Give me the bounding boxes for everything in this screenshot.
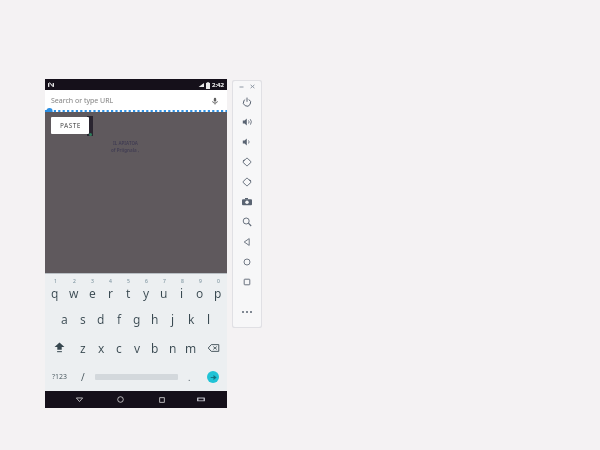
button[interactable]: a (55, 304, 74, 333)
button[interactable]: 4 (101, 274, 119, 304)
button[interactable]: g (128, 304, 146, 333)
staticText: 1 (54, 278, 57, 285)
button[interactable]: s (74, 304, 92, 333)
staticText: u (160, 285, 168, 301)
button[interactable]: 7 (155, 274, 173, 304)
button[interactable]: h (146, 304, 164, 333)
button[interactable]: Space (91, 362, 181, 391)
button[interactable]: ?123 (45, 362, 74, 391)
button[interactable]: Overview (233, 272, 261, 292)
button[interactable]: Go (198, 362, 227, 391)
button[interactable]: m (182, 333, 200, 362)
button[interactable]: v (128, 333, 146, 362)
button[interactable]: Recent apps (141, 391, 182, 408)
staticText: 9 (199, 278, 202, 285)
button[interactable]: f (110, 304, 128, 333)
button[interactable]: 0 (209, 274, 227, 304)
button[interactable]: 3 (83, 274, 101, 304)
button[interactable]: . (181, 362, 198, 391)
staticText: x (98, 340, 105, 356)
staticText: z (80, 340, 86, 356)
button[interactable]: b (146, 333, 164, 362)
button[interactable]: Take screenshot (233, 192, 261, 212)
staticText: q (51, 285, 59, 301)
staticText: k (188, 311, 195, 327)
button[interactable]: Shift (45, 333, 73, 362)
staticText: s (80, 311, 86, 327)
button[interactable]: / (74, 362, 91, 391)
staticText: y (143, 285, 150, 301)
staticText: 6 (145, 278, 148, 285)
button[interactable]: k (182, 304, 200, 333)
button[interactable]: Close (249, 83, 256, 90)
staticText: p (214, 285, 222, 301)
staticText: a (61, 311, 68, 327)
staticText: 7 (163, 278, 166, 285)
button[interactable]: 8 (173, 274, 191, 304)
staticText: f (117, 311, 122, 327)
staticText: 3 (91, 278, 94, 285)
button[interactable]: Zoom (233, 212, 261, 232)
staticText: b (151, 340, 159, 356)
staticText: r (108, 285, 113, 301)
staticText: l (207, 311, 211, 327)
staticText: c (116, 340, 122, 356)
staticText: PASTE (60, 121, 81, 130)
button[interactable]: Home (100, 391, 141, 408)
staticText: 0 (217, 278, 220, 285)
button[interactable]: 2 (64, 274, 83, 304)
button[interactable]: 6 (137, 274, 155, 304)
button[interactable]: Rotate right (233, 172, 261, 192)
button[interactable]: Hide keyboard (182, 391, 219, 408)
staticText: j (171, 311, 175, 327)
staticText: t (126, 285, 131, 301)
staticText: d (97, 311, 105, 327)
button[interactable]: PASTE (51, 117, 89, 134)
staticText: w (69, 285, 79, 301)
staticText: m (185, 340, 197, 356)
staticText: / (81, 370, 85, 384)
staticText: n (169, 340, 177, 356)
button[interactable]: d (92, 304, 110, 333)
button[interactable]: Back (233, 232, 261, 252)
button[interactable]: Home (233, 252, 261, 272)
staticText: of Priignala , (111, 147, 140, 153)
staticText: h (151, 311, 159, 327)
button[interactable]: Minimize (238, 83, 245, 90)
button[interactable]: Power (233, 92, 261, 112)
button[interactable]: n (164, 333, 182, 362)
staticText: 2 (73, 278, 76, 285)
button[interactable]: j (164, 304, 182, 333)
button[interactable]: Volume down (233, 132, 261, 152)
staticText: . (188, 371, 191, 383)
staticText: ?123 (52, 372, 68, 382)
button[interactable]: 5 (119, 274, 137, 304)
staticText: 2:42 (212, 81, 224, 89)
button[interactable]: Back (59, 391, 100, 408)
button[interactable]: Backspace (200, 333, 227, 362)
button[interactable]: Voice search (210, 96, 220, 106)
staticText: 8 (181, 278, 184, 285)
staticText: g (133, 311, 141, 327)
staticText: e (89, 285, 96, 301)
staticText: v (134, 340, 141, 356)
staticText: IL APIATOA (113, 140, 138, 146)
button[interactable]: c (110, 333, 128, 362)
staticText: i (180, 285, 184, 301)
button[interactable]: l (200, 304, 218, 333)
button[interactable]: 9 (191, 274, 209, 304)
staticText: 5 (127, 278, 130, 285)
staticText: Search or type URL (51, 96, 114, 106)
staticText: o (196, 285, 204, 301)
button[interactable]: Rotate left (233, 152, 261, 172)
staticText: 4 (109, 278, 112, 285)
button[interactable]: Search or type URL (45, 90, 227, 112)
button[interactable]: 1 (45, 274, 64, 304)
button[interactable]: Volume up (233, 112, 261, 132)
button[interactable]: More (233, 301, 261, 323)
button[interactable]: z (73, 333, 92, 362)
button[interactable]: x (92, 333, 110, 362)
